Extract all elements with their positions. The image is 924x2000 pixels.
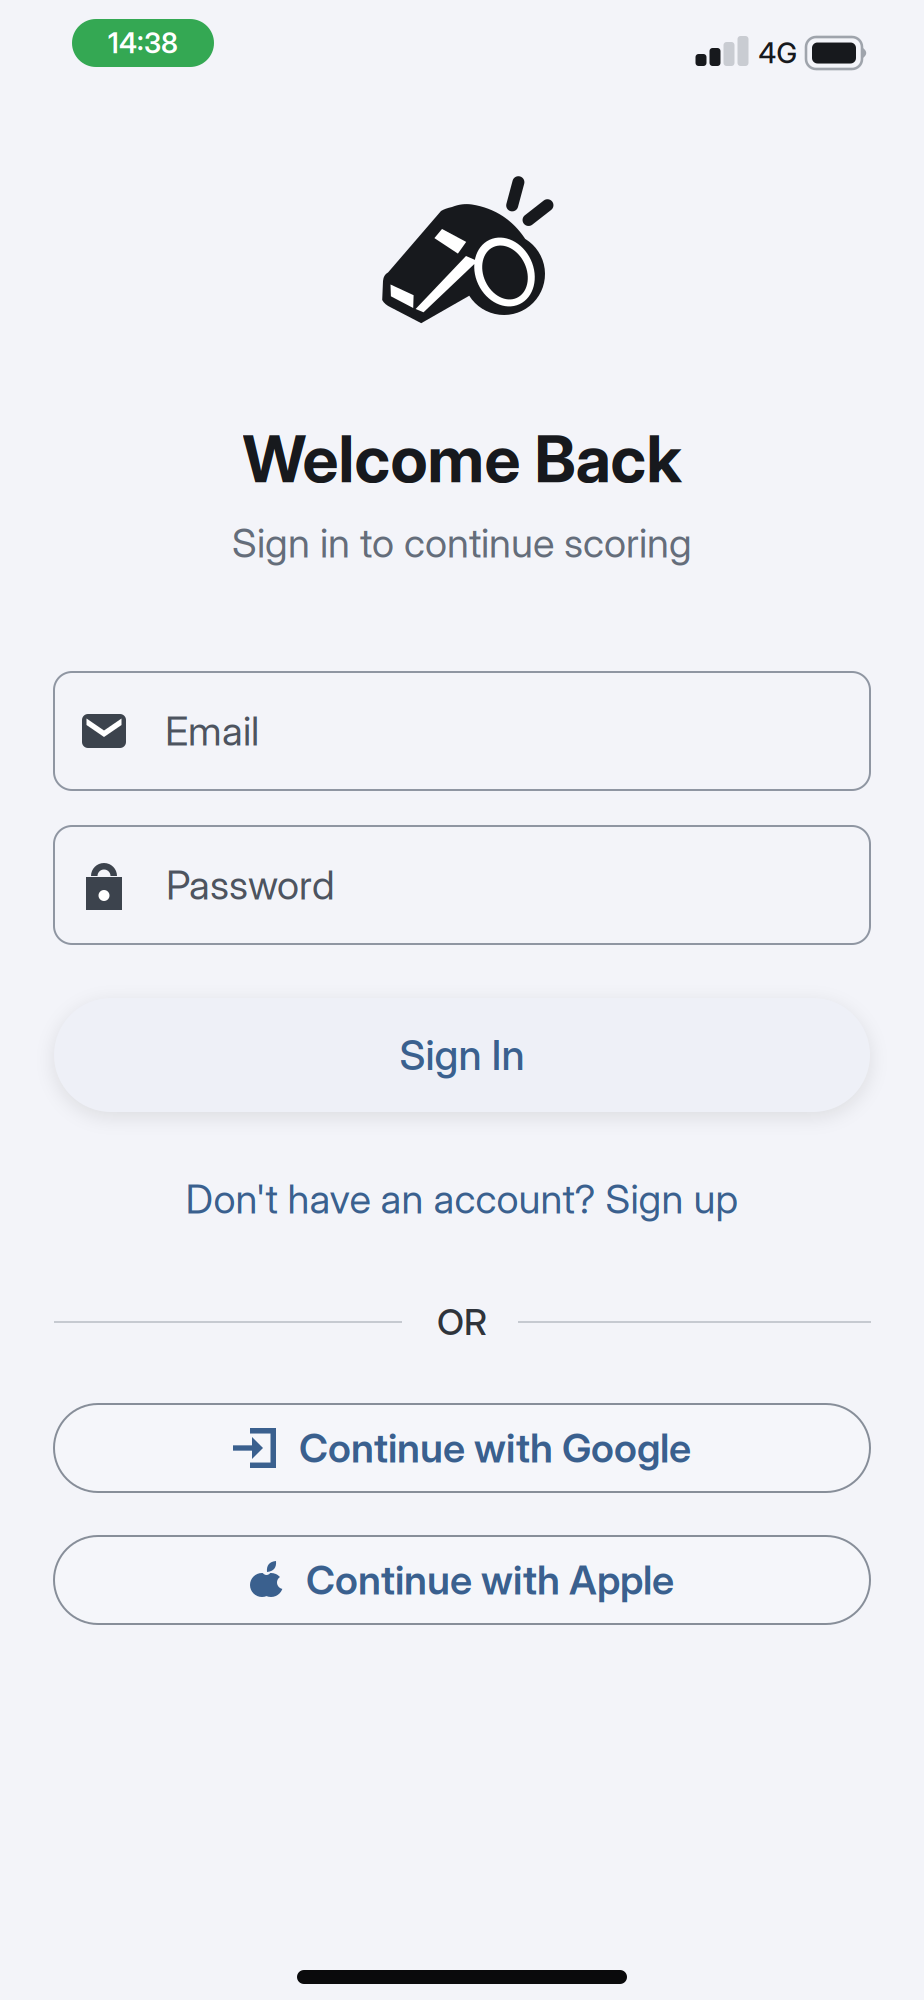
staticText: 4G xyxy=(758,36,797,69)
staticText: Continue with Google xyxy=(299,1424,691,1472)
button[interactable]: Continue with Google xyxy=(54,1404,870,1492)
staticText: Email xyxy=(165,707,259,755)
button[interactable]: Sign In xyxy=(54,998,870,1112)
button[interactable]: Password xyxy=(54,826,870,944)
staticText: Sign in to continue scoring xyxy=(232,519,692,567)
button[interactable]: Email xyxy=(54,672,870,790)
staticText: Don't have an account? Sign up xyxy=(185,1175,738,1223)
button[interactable]: Continue with Apple xyxy=(54,1536,870,1624)
button[interactable]: Don't have an account? Sign up xyxy=(185,1175,738,1223)
staticText: Continue with Apple xyxy=(306,1556,674,1604)
staticText: Welcome Back xyxy=(242,421,681,497)
staticText: Sign In xyxy=(399,1031,524,1079)
staticText: OR xyxy=(437,1301,487,1343)
staticText: 14:38 xyxy=(108,26,178,59)
staticText: Password xyxy=(166,861,335,909)
